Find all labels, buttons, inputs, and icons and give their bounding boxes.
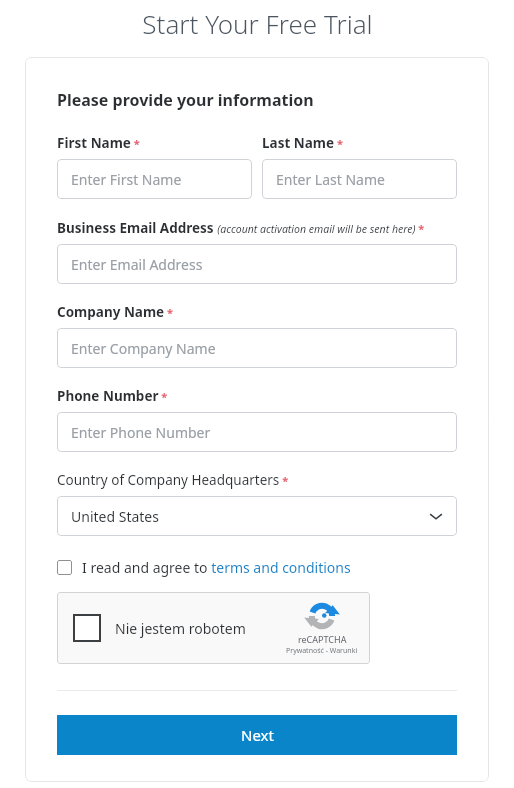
button[interactable]: Enter First Name <box>57 159 252 199</box>
staticText: Company Name * <box>57 303 173 321</box>
staticText: Enter Email Address <box>71 255 203 274</box>
button[interactable]: Nie jestem robotem <box>57 592 370 664</box>
staticText: Enter First Name <box>71 170 182 189</box>
staticText: Prywatność - Warunki <box>286 646 358 656</box>
staticText: reCAPTCHA <box>298 633 347 645</box>
button[interactable]: United States <box>57 496 457 536</box>
button[interactable]: Enter Company Name <box>57 328 457 368</box>
button[interactable]: Enter Email Address <box>57 244 457 284</box>
staticText: United States <box>71 507 159 526</box>
button[interactable]: I read and agree to terms and conditions <box>57 556 351 579</box>
button[interactable]: Enter Last Name <box>262 159 457 199</box>
staticText: Start Your Free Trial <box>142 6 373 41</box>
staticText: Please provide your information <box>57 89 314 111</box>
staticText: Phone Number * <box>57 387 168 405</box>
staticText: Business Email Address (account activati… <box>57 218 425 237</box>
staticText: Nie jestem robotem <box>115 619 246 638</box>
staticText: Enter Last Name <box>276 170 385 189</box>
staticText: Next <box>241 725 274 745</box>
staticText: Country of Company Headquarters * <box>57 471 289 489</box>
staticText: Enter Company Name <box>71 339 216 358</box>
staticText: I read and agree to terms and conditions <box>82 558 351 577</box>
button[interactable]: Next <box>57 715 457 755</box>
button[interactable]: Enter Phone Number <box>57 412 457 452</box>
staticText: First Name * <box>57 134 140 152</box>
staticText: Last Name * <box>262 134 343 152</box>
staticText: Enter Phone Number <box>71 423 211 442</box>
